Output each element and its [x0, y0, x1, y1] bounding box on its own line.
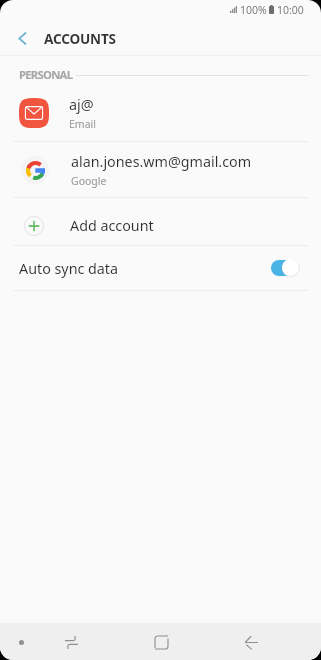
staticText: Email: [69, 117, 96, 131]
button[interactable]: Home: [147, 628, 175, 656]
staticText: alan.jones.wm@gmail.com: [71, 152, 252, 171]
staticText: Add account: [70, 216, 154, 235]
staticText: 10:00: [277, 3, 304, 17]
button[interactable]: alan.jones.wm@gmail.com: [0, 142, 321, 198]
staticText: Google: [71, 174, 107, 188]
button[interactable]: Recent apps: [57, 628, 85, 656]
button[interactable]: Assistant: [7, 628, 35, 656]
staticText: aj@: [69, 95, 94, 114]
staticText: 100%: [240, 3, 267, 17]
button[interactable]: Add account: [0, 198, 321, 245]
button[interactable]: Navigate up: [8, 24, 36, 52]
button[interactable]: Auto sync data: [0, 246, 321, 290]
staticText: ACCOUNTS: [44, 29, 116, 48]
staticText: Auto sync data: [19, 259, 119, 278]
button[interactable]: Back: [237, 628, 265, 656]
staticText: PERSONAL: [19, 67, 73, 82]
button[interactable]: aj@: [0, 85, 321, 141]
